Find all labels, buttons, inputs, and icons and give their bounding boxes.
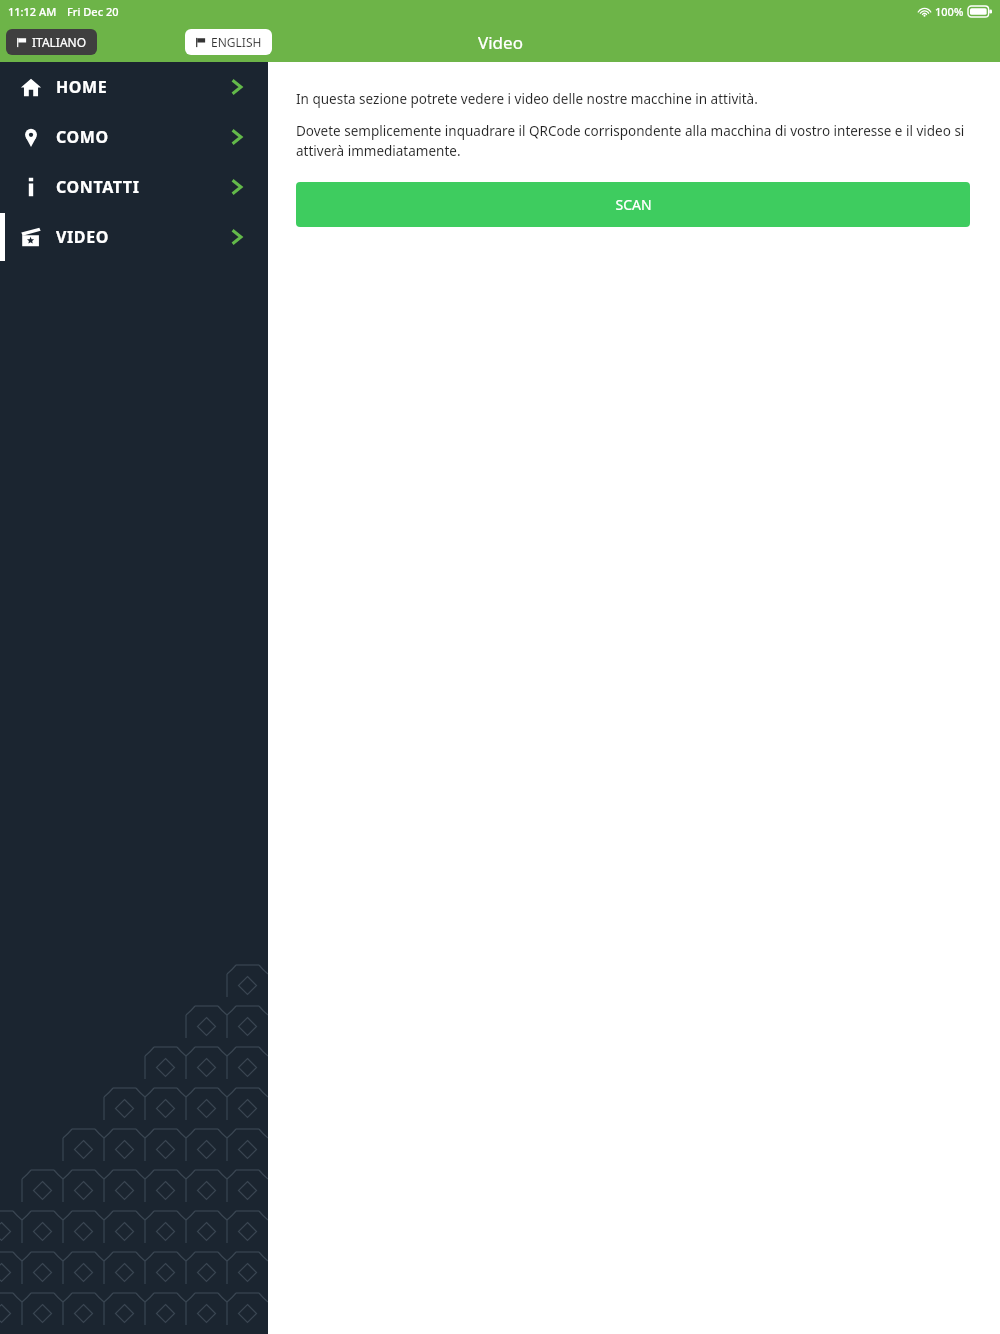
staticText: In questa sezione potrete vedere i video… [296,90,758,108]
button[interactable]: CONTATTI [0,162,268,212]
staticText: 100% [935,4,964,19]
button[interactable]: ENGLISH [185,29,272,55]
staticText: Video [478,31,523,54]
staticText: Fri Dec 20 [67,4,119,19]
button[interactable]: SCAN [296,182,970,227]
staticText: HOME [56,76,108,98]
staticText: CONTATTI [56,176,140,198]
staticText: VIDEO [56,226,109,248]
button[interactable]: ITALIANO [6,29,97,55]
staticText: ITALIANO [32,34,87,50]
button[interactable]: HOME [0,62,268,112]
button[interactable]: COMO [0,112,268,162]
button[interactable]: VIDEO [0,212,268,262]
staticText: Dovete semplicemente inquadrare il QRCod… [296,122,970,160]
staticText: SCAN [615,195,652,214]
staticText: ENGLISH [211,34,262,50]
staticText: COMO [56,126,109,148]
staticText: 11:12 AM [8,4,57,19]
